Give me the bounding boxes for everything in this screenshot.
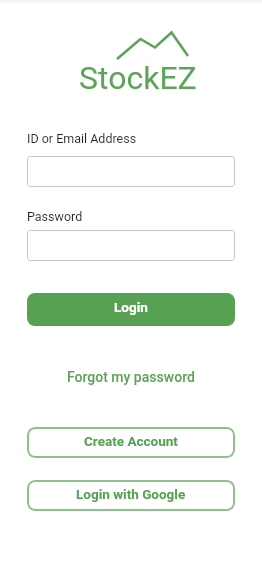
staticText: ID or Email Address [27, 131, 137, 146]
staticText: Password [27, 209, 83, 224]
button[interactable]: Login [27, 293, 235, 326]
button[interactable]: Forgot my password [63, 365, 199, 389]
button[interactable] [27, 230, 235, 261]
staticText: Login [114, 299, 148, 315]
button[interactable]: Login with Google [27, 480, 235, 511]
staticText: StockEZ [79, 59, 197, 97]
button[interactable] [27, 156, 235, 187]
staticText: Login with Google [76, 486, 186, 502]
button[interactable]: Create Account [27, 427, 235, 458]
staticText: Create Account [84, 433, 178, 449]
